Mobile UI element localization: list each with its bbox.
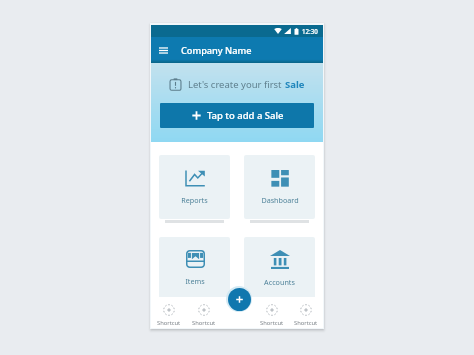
staticText: Items: [185, 276, 205, 286]
button[interactable]: Shortcut: [151, 298, 186, 327]
button[interactable]: Items: [159, 237, 230, 299]
staticText: Tap to add a Sale: [207, 109, 284, 122]
button[interactable]: Open navigation menu: [155, 42, 171, 58]
staticText: Reports: [181, 195, 208, 205]
staticText: 12:30: [302, 27, 318, 35]
button[interactable]: Add: [228, 288, 251, 311]
button[interactable]: Dashboard: [244, 155, 315, 219]
button[interactable]: Reports: [159, 155, 230, 219]
staticText: Shortcut: [260, 319, 284, 327]
staticText: Shortcut: [157, 319, 181, 327]
staticText: Shortcut: [192, 319, 216, 327]
staticText: Accounts: [264, 277, 295, 287]
button[interactable]: Shortcut: [255, 298, 289, 327]
staticText: Sale: [285, 78, 305, 91]
staticText: Company Name: [181, 44, 252, 57]
staticText: Let's create your first: [188, 78, 285, 91]
button[interactable]: Accounts: [244, 237, 315, 299]
button[interactable]: Tap to add a Sale: [160, 103, 314, 128]
button[interactable]: Shortcut: [289, 298, 323, 327]
staticText: Shortcut: [294, 319, 318, 327]
button[interactable]: Shortcut: [186, 298, 221, 327]
staticText: Dashboard: [261, 195, 299, 205]
